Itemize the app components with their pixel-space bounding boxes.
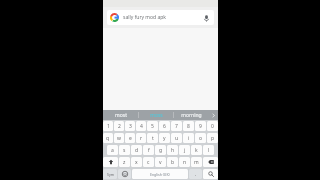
button[interactable]: More suggestions — [208, 110, 218, 120]
button[interactable]: v — [155, 157, 166, 167]
staticText: 7 — [175, 123, 178, 130]
staticText: 5 — [151, 123, 154, 130]
button[interactable]: Emoji — [118, 169, 131, 179]
button[interactable]: j — [179, 145, 190, 155]
button[interactable]: a — [107, 145, 118, 155]
button[interactable]: 3 — [125, 121, 135, 131]
staticText: d — [135, 147, 139, 154]
button[interactable]: English (UK) — [132, 169, 188, 179]
button[interactable]: 5 — [147, 121, 158, 131]
staticText: most — [115, 112, 127, 119]
button[interactable]: y — [159, 133, 170, 143]
staticText: 1 — [107, 123, 110, 130]
staticText: e — [129, 135, 132, 142]
staticText: z — [123, 159, 126, 166]
staticText: n — [183, 159, 187, 166]
staticText: g — [159, 147, 163, 154]
button[interactable]: h — [167, 145, 178, 155]
button[interactable]: Voice search — [201, 13, 211, 23]
staticText: f — [148, 147, 150, 154]
staticText: p — [211, 135, 215, 142]
staticText: x — [135, 159, 138, 166]
button[interactable]: x — [131, 157, 142, 167]
staticText: i — [188, 135, 190, 142]
button[interactable]: Search — [203, 169, 218, 179]
staticText: h — [171, 147, 175, 154]
staticText: 6 — [163, 123, 166, 130]
staticText: c — [147, 159, 150, 166]
staticText: j — [184, 147, 186, 154]
button[interactable]: m — [191, 157, 202, 167]
staticText: . — [195, 171, 197, 178]
staticText: 2 — [118, 123, 121, 130]
button[interactable]: r — [136, 133, 146, 143]
button[interactable]: most — [103, 110, 138, 120]
button[interactable]: morning — [174, 110, 208, 120]
button[interactable]: f — [143, 145, 154, 155]
staticText: Sym — [107, 172, 114, 177]
button[interactable]: s — [119, 145, 130, 155]
button[interactable]: 2 — [114, 121, 124, 131]
staticText: r — [140, 135, 143, 142]
staticText: k — [195, 147, 198, 154]
button[interactable]: l — [203, 145, 214, 155]
staticText: 8 — [187, 123, 190, 130]
staticText: u — [175, 135, 179, 142]
button[interactable]: sally fury mod apk — [107, 10, 214, 25]
button[interactable]: . — [189, 169, 202, 179]
button[interactable]: 9 — [195, 121, 206, 131]
button[interactable]: 8 — [183, 121, 194, 131]
button[interactable]: 6 — [159, 121, 170, 131]
button[interactable]: i — [183, 133, 194, 143]
button[interactable]: Shift — [103, 157, 118, 167]
staticText: 3 — [129, 123, 132, 130]
button[interactable]: Backspace — [203, 157, 218, 167]
button[interactable]: u — [171, 133, 182, 143]
button[interactable]: n — [179, 157, 190, 167]
button[interactable]: p — [207, 133, 218, 143]
staticText: a — [111, 147, 114, 154]
button[interactable]: e — [125, 133, 135, 143]
button[interactable]: g — [155, 145, 166, 155]
button[interactable]: 1 — [103, 121, 113, 131]
staticText: o — [199, 135, 203, 142]
staticText: sally fury mod apk — [123, 14, 201, 21]
button[interactable]: moss — [139, 110, 173, 120]
button[interactable]: 0 — [207, 121, 218, 131]
button[interactable]: k — [191, 145, 202, 155]
button[interactable]: b — [167, 157, 178, 167]
staticText: moss — [150, 112, 163, 119]
staticText: 0 — [211, 123, 214, 130]
button[interactable]: c — [143, 157, 154, 167]
staticText: l — [208, 147, 210, 154]
staticText: 9 — [199, 123, 202, 130]
staticText: 4 — [140, 123, 143, 130]
button[interactable]: q — [103, 133, 113, 143]
button[interactable]: 4 — [136, 121, 146, 131]
staticText: t — [152, 135, 154, 142]
button[interactable]: t — [147, 133, 158, 143]
staticText: morning — [181, 112, 202, 119]
staticText: q — [106, 135, 110, 142]
button[interactable]: z — [119, 157, 130, 167]
staticText: English (UK) — [150, 172, 170, 177]
staticText: y — [163, 135, 166, 142]
button[interactable]: d — [131, 145, 142, 155]
button[interactable]: Sym — [103, 169, 117, 179]
staticText: v — [159, 159, 162, 166]
staticText: b — [171, 159, 175, 166]
staticText: s — [123, 147, 126, 154]
button[interactable]: w — [114, 133, 124, 143]
staticText: w — [117, 135, 121, 142]
button[interactable]: 7 — [171, 121, 182, 131]
button[interactable]: o — [195, 133, 206, 143]
staticText: m — [194, 159, 199, 166]
